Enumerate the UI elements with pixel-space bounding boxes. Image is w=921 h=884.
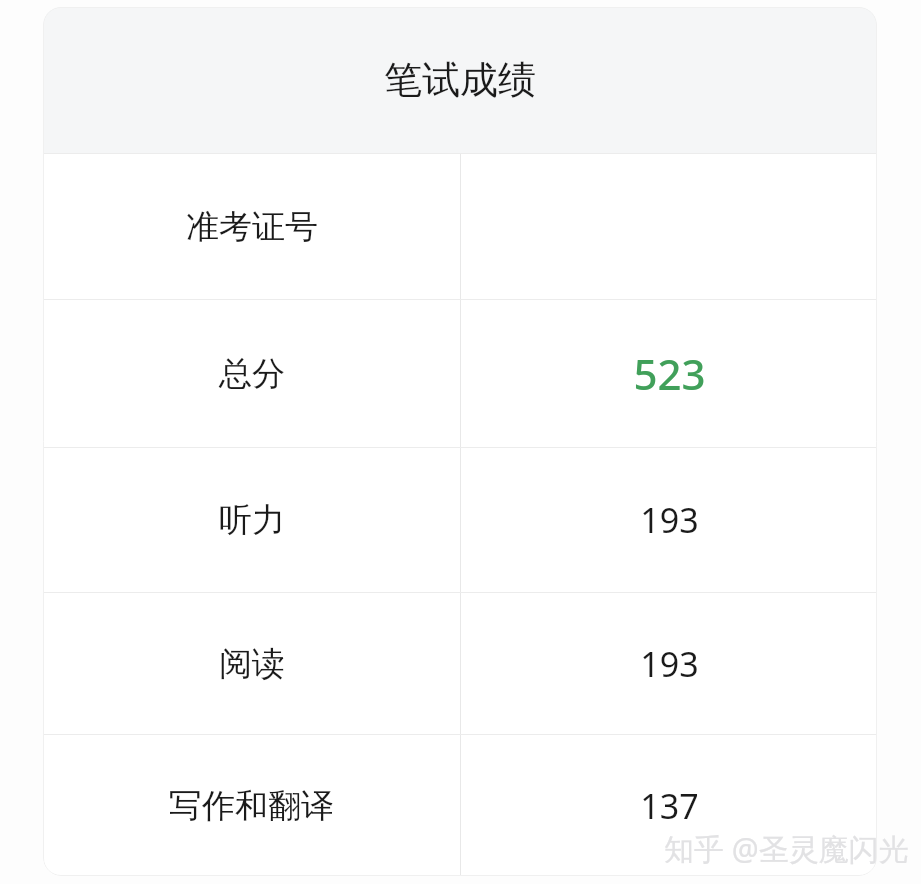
button[interactable]: 阅读 (43, 593, 877, 734)
staticText: 准考证号 (186, 206, 318, 248)
staticText: 听力 (219, 499, 285, 541)
staticText: 知乎 @圣灵魔闪光 (664, 828, 909, 869)
button[interactable]: 听力 (43, 448, 877, 592)
staticText: 137 (640, 783, 699, 829)
staticText: 写作和翻译 (169, 785, 334, 827)
button[interactable]: 总分 (43, 300, 877, 447)
button[interactable]: 写作和翻译 (43, 735, 877, 876)
button[interactable]: 准考证号 (43, 154, 877, 299)
staticText: 193 (640, 641, 699, 687)
staticText: 193 (640, 497, 699, 543)
staticText: 笔试成绩 (384, 56, 536, 104)
staticText: 阅读 (219, 643, 285, 685)
staticText: 总分 (219, 353, 285, 395)
staticText: 523 (633, 345, 706, 402)
